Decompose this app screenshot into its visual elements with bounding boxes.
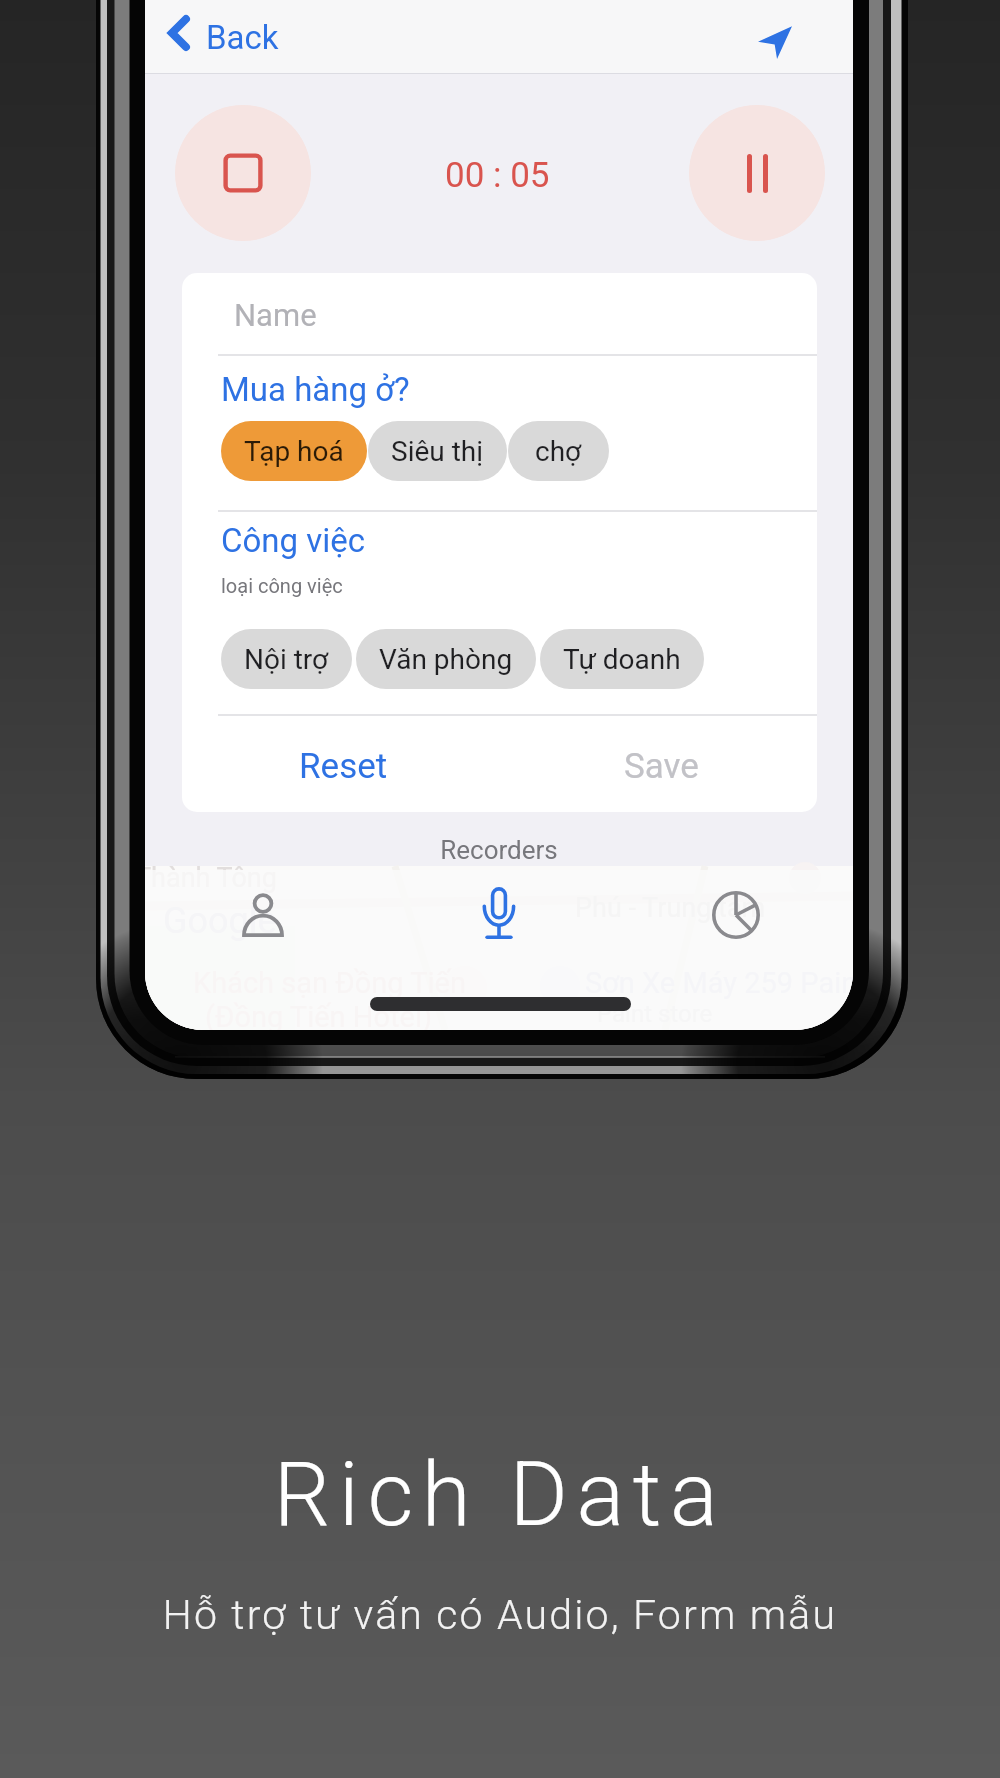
button[interactable]: Stop recording: [175, 105, 311, 241]
button[interactable]: Profile: [215, 871, 311, 955]
button[interactable]: Tạp hoá: [221, 421, 367, 481]
button[interactable]: Back: [145, 0, 295, 74]
staticText: Siêu thị: [391, 435, 484, 468]
button[interactable]: Nội trợ: [221, 629, 352, 689]
staticText: Tạp hoá: [244, 435, 344, 468]
staticText: Khách sạn Đồng Tiến: [193, 966, 466, 1000]
button[interactable]: Record: [451, 871, 547, 955]
button[interactable]: Siêu thị: [368, 421, 507, 481]
staticText: Name: [234, 297, 317, 333]
staticText: Thành Tông: [145, 862, 277, 894]
staticText: Phú - Trung tâm: [575, 892, 766, 924]
staticText: Paint store: [597, 1000, 713, 1028]
button[interactable]: Tự doanh: [540, 629, 704, 689]
staticText: Save: [624, 746, 699, 787]
staticText: Hỗ trợ tư vấn có Audio, Form mẫu: [0, 1591, 1000, 1639]
button[interactable]: Send: [745, 12, 805, 72]
staticText: (Đồng Tiến Hotel): [205, 1000, 433, 1030]
button[interactable]: Save: [502, 718, 817, 812]
staticText: Sơn Xe Máy 259 Paint: [585, 966, 853, 1000]
staticText: Nội trợ: [244, 643, 329, 676]
button[interactable]: Pause recording: [689, 105, 825, 241]
staticText: Recorders: [145, 835, 853, 865]
staticText: Google: [163, 900, 277, 942]
staticText: Tự doanh: [563, 643, 681, 676]
button[interactable]: chợ: [508, 421, 609, 481]
button[interactable]: Văn phòng: [356, 629, 536, 689]
staticText: Rich Data: [0, 1442, 1000, 1546]
staticText: loại công việc: [221, 574, 343, 597]
staticText: Reset: [299, 746, 388, 787]
staticText: Back: [206, 18, 279, 57]
staticText: 00 : 05: [445, 155, 550, 196]
staticText: Công việc: [221, 521, 366, 560]
staticText: Mua hàng ở?: [221, 370, 410, 409]
staticText: chợ: [535, 435, 582, 468]
staticText: Văn phòng: [379, 643, 513, 676]
button[interactable]: Statistics: [688, 873, 784, 957]
button[interactable]: Reset: [185, 718, 502, 812]
